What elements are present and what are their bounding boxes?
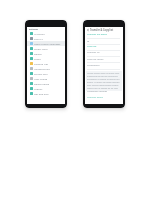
- staticText: Privacy poli: [34, 72, 48, 75]
- staticText: Device: [34, 52, 42, 55]
- button[interactable]: Camera Net: [27, 61, 65, 66]
- staticText: Componen: [87, 63, 100, 66]
- button[interactable]: Device opera: [27, 81, 65, 86]
- staticText: Advanced set: [34, 67, 50, 70]
- staticText: Timer: [34, 57, 41, 60]
- button[interactable]: Transfer items: [87, 95, 109, 98]
- staticText: Light Control Manager: [34, 42, 61, 45]
- staticText: Transfer items: [87, 95, 104, 98]
- staticText: aliqua. Ut enim ad minim veniam: [87, 81, 120, 84]
- button[interactable]: Smart conn: [27, 46, 65, 51]
- button[interactable]: Timer: [27, 56, 65, 61]
- button[interactable]: Accounts: [27, 31, 65, 36]
- staticText: Copy list: [87, 44, 97, 47]
- button[interactable]: Privacy poli: [27, 71, 65, 76]
- staticText: Lorem ipsum dolor sit amet cons: [87, 72, 120, 75]
- button[interactable]: Wifi 2.4: [27, 36, 65, 41]
- staticText: Transfer co: [87, 50, 100, 53]
- staticText: Additional settings: [87, 90, 108, 93]
- staticText: incididunt ut labore et dolore ma: [87, 78, 120, 81]
- button[interactable]: User Guide: [27, 76, 65, 81]
- button[interactable]: Back: [85, 27, 123, 32]
- staticText: Camera Net: [34, 62, 48, 65]
- other: Back: [87, 29, 89, 31]
- staticText: Id: [87, 39, 90, 42]
- staticText: laboris nisi ut aliquip ex ea com: [87, 87, 118, 90]
- button[interactable]: Light Control Manager: [27, 41, 65, 46]
- staticText: Transfer list items: [87, 32, 107, 35]
- staticText: Transfer & Copy list: [90, 28, 114, 31]
- button[interactable]: Get app info: [27, 91, 65, 96]
- staticText: Wifi 2.4: [34, 37, 43, 40]
- staticText: adipiscing elit sed do eiusmod t: [87, 75, 119, 78]
- staticText: Smart conn: [34, 47, 48, 50]
- staticText: User Guide: [34, 77, 48, 80]
- button[interactable]: Advanced set: [27, 66, 65, 71]
- staticText: Accounts: [34, 32, 45, 35]
- staticText: Logout: [34, 87, 43, 90]
- staticText: Get app info: [34, 92, 49, 95]
- staticText: quis nostrud exercitation ullamc: [87, 84, 119, 87]
- staticText: Settings: [29, 28, 38, 31]
- staticText: Device opera: [34, 82, 50, 85]
- staticText: Copy list items: [87, 57, 104, 60]
- button[interactable]: Logout: [27, 86, 65, 91]
- button[interactable]: Device: [27, 51, 65, 56]
